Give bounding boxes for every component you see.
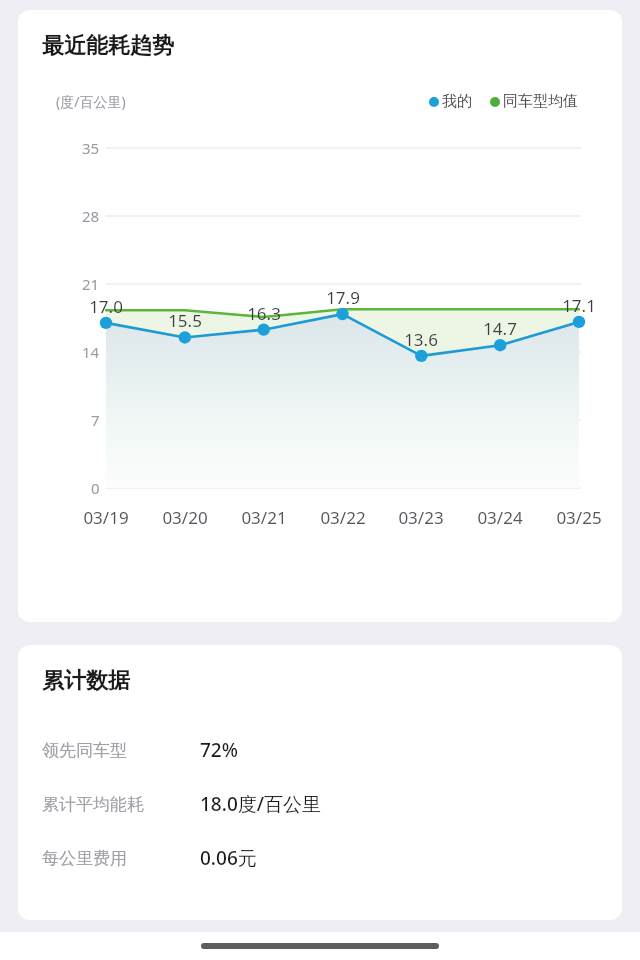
staticText: 0 — [91, 478, 100, 498]
staticText: 同车型均值 — [503, 92, 578, 111]
staticText: 03/23 — [398, 506, 444, 529]
button[interactable]: 我的 — [429, 92, 472, 111]
staticText: 领先同车型 — [42, 740, 127, 761]
staticText: 15.5 — [168, 309, 202, 332]
staticText: 21 — [82, 274, 100, 294]
staticText: 我的 — [442, 92, 472, 111]
button[interactable]: 每公里费用 — [18, 843, 622, 873]
staticText: 16.3 — [247, 302, 281, 325]
staticText: 7 — [91, 410, 100, 430]
staticText: 累计数据 — [42, 667, 130, 695]
staticText: 03/21 — [241, 506, 287, 529]
staticText: 03/25 — [556, 506, 602, 529]
staticText: 14 — [82, 342, 100, 362]
staticText: 18.0度/百公里 — [200, 791, 322, 817]
staticText: 03/20 — [162, 506, 208, 529]
staticText: 17.9 — [326, 286, 360, 309]
button[interactable]: 累计数据 — [18, 645, 622, 920]
button[interactable]: 最近能耗趋势 — [18, 10, 622, 622]
staticText: (度/百公里) — [56, 92, 126, 111]
staticText: 每公里费用 — [42, 848, 127, 869]
staticText: 最近能耗趋势 — [42, 32, 174, 60]
staticText: 35 — [82, 138, 100, 158]
staticText: 14.7 — [483, 317, 517, 340]
button[interactable]: 领先同车型 — [18, 735, 622, 765]
staticText: 17.0 — [89, 295, 123, 318]
staticText: 03/24 — [477, 506, 523, 529]
staticText: 17.1 — [562, 294, 596, 317]
button[interactable]: 累计平均能耗 — [18, 789, 622, 819]
staticText: 0.06元 — [200, 845, 257, 871]
staticText: 72% — [200, 737, 238, 763]
button[interactable]: 同车型均值 — [490, 92, 578, 111]
staticText: 28 — [82, 206, 100, 226]
staticText: 13.6 — [404, 328, 438, 351]
staticText: 03/19 — [83, 506, 129, 529]
staticText: 累计平均能耗 — [42, 794, 144, 815]
staticText: 03/22 — [320, 506, 366, 529]
